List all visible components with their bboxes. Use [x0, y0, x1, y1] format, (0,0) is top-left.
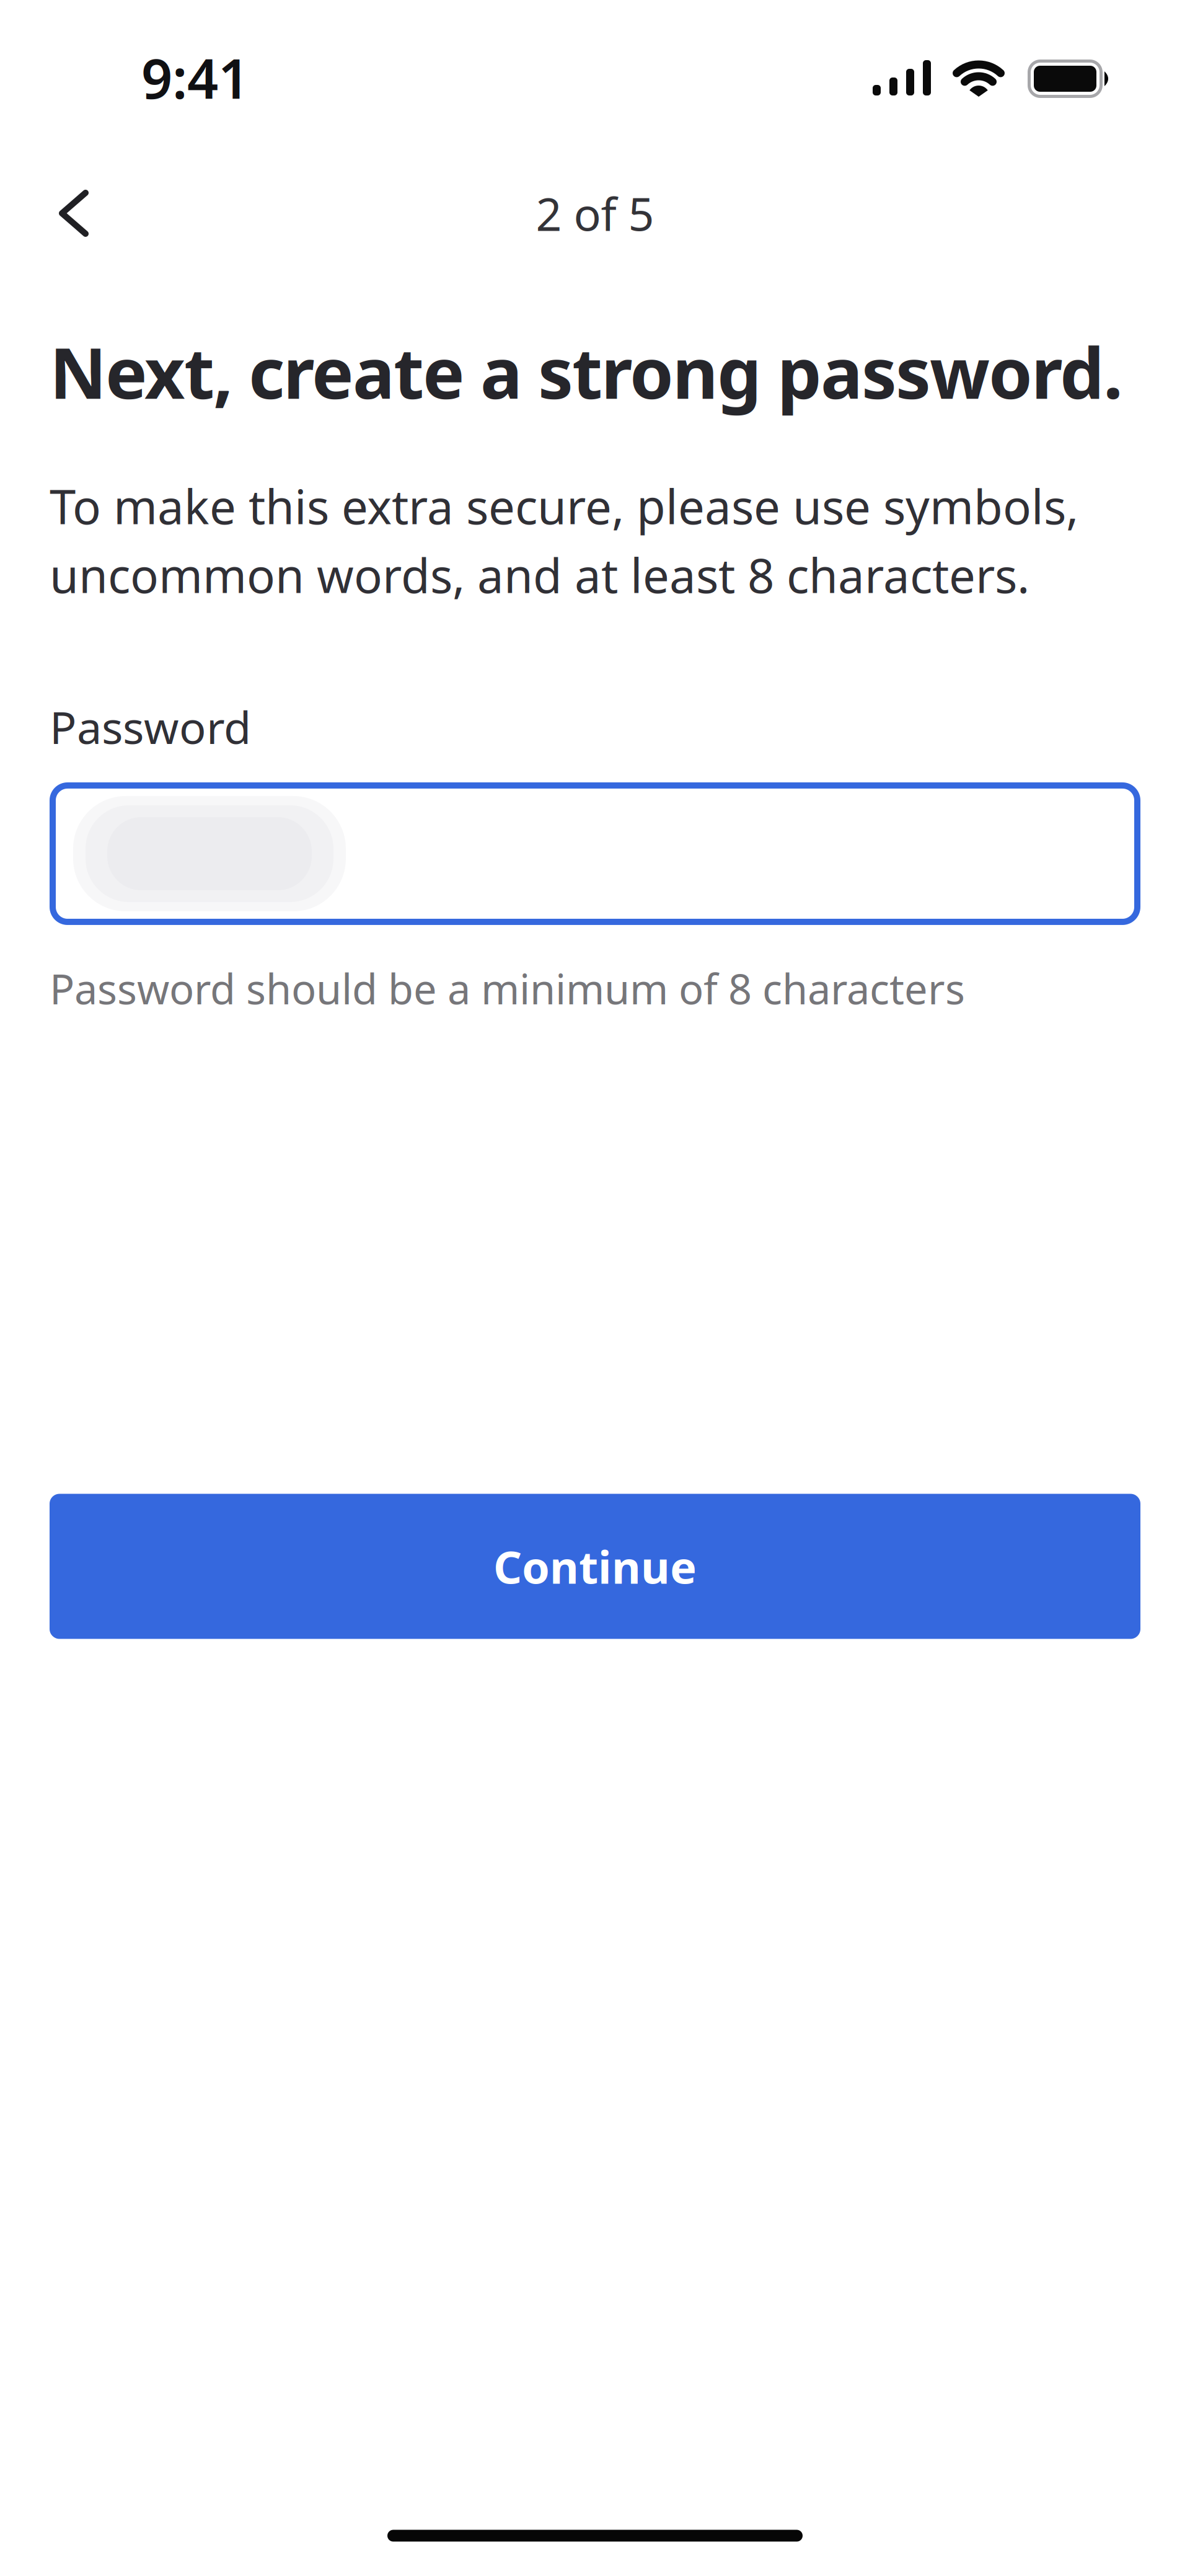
staticText: 2 of 5: [536, 183, 654, 243]
button[interactable]: Back: [0, 176, 123, 250]
staticText: Password should be a minimum of 8 charac…: [50, 961, 965, 1016]
staticText: Password: [50, 697, 251, 756]
staticText: 9:41: [141, 41, 249, 114]
button[interactable]: Password: [0, 782, 1190, 925]
button[interactable]: Continue: [0, 1494, 1190, 1639]
staticText: Next, create a strong password.: [50, 325, 1123, 418]
staticText: To make this extra secure, please use sy…: [50, 475, 1078, 606]
staticText: Continue: [493, 1537, 697, 1596]
